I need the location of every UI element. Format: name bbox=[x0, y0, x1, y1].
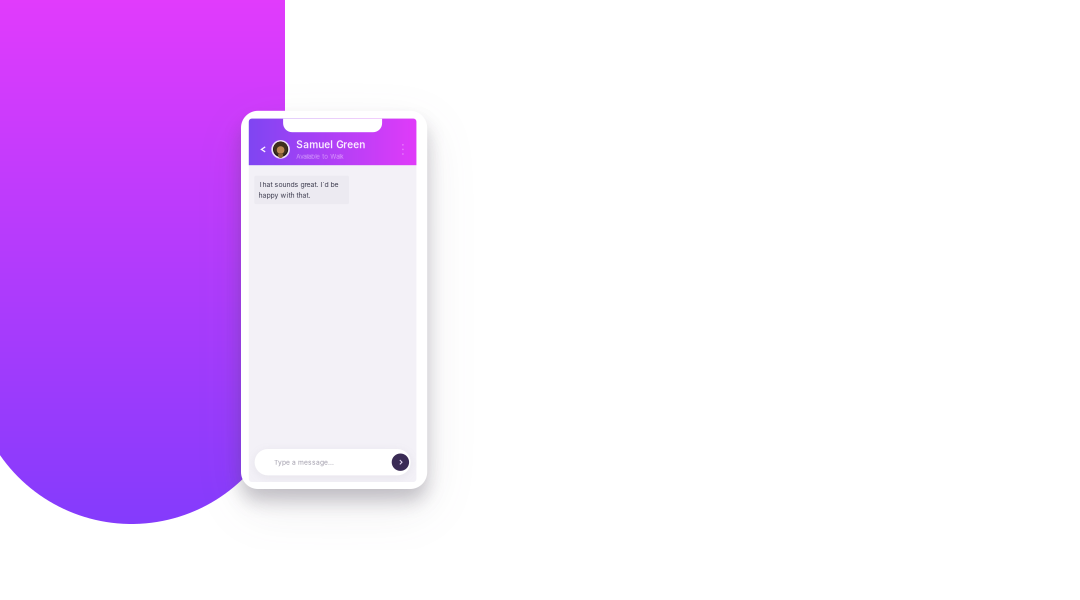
button[interactable]: More options bbox=[395, 143, 413, 155]
staticText: That sounds great. I'd be bbox=[258, 180, 338, 189]
staticText: happy with that. bbox=[258, 191, 310, 199]
staticText: Samuel Green bbox=[296, 139, 365, 151]
button[interactable]: Back bbox=[255, 141, 271, 158]
staticText: Type a message... bbox=[274, 458, 334, 466]
button[interactable]: Send message bbox=[392, 453, 409, 471]
staticText: Available to Walk bbox=[296, 153, 343, 160]
